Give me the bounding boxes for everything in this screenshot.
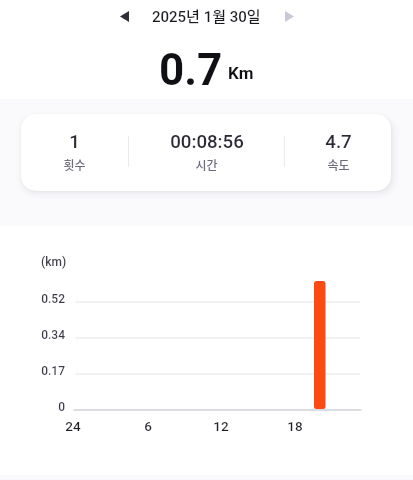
staticText: 00:08:56 xyxy=(170,131,244,153)
staticText: 1 xyxy=(69,131,80,153)
staticText: 2025년 1월 30일 xyxy=(152,5,261,27)
staticText: 18 xyxy=(275,418,315,434)
staticText: 0.34 xyxy=(0,328,65,342)
button[interactable]: Previous day xyxy=(111,3,137,29)
staticText: 6 xyxy=(128,418,168,434)
button[interactable]: 1 xyxy=(21,114,391,191)
staticText: 24 xyxy=(53,418,93,434)
staticText: 0.7 xyxy=(159,44,223,96)
staticText: 0.52 xyxy=(0,292,65,306)
staticText: 시간 xyxy=(195,156,218,173)
staticText: 12 xyxy=(201,418,241,434)
staticText: 0 xyxy=(0,400,65,414)
staticText: 속도 xyxy=(327,156,350,173)
staticText: 4.7 xyxy=(325,131,352,153)
button[interactable]: Next day xyxy=(276,3,302,29)
staticText: Km xyxy=(228,63,254,83)
staticText: 횟수 xyxy=(63,156,86,173)
staticText: (km) xyxy=(41,255,67,269)
staticText: 0.17 xyxy=(0,364,65,378)
